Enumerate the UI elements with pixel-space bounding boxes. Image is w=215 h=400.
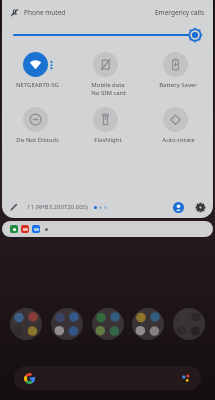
button[interactable]: NETGEAR70-5G <box>2 52 73 89</box>
other: Google Search <box>24 373 35 384</box>
staticText: No SIM card <box>91 89 126 97</box>
button[interactable] <box>12 24 203 46</box>
button[interactable]: App folder <box>132 308 164 340</box>
button[interactable]: Settings <box>195 202 206 213</box>
button[interactable]: App folder <box>173 308 205 340</box>
staticText: Do Not Disturb <box>16 136 59 144</box>
button[interactable]: Google Search <box>14 366 201 390</box>
button[interactable]: App folder <box>92 308 124 340</box>
button[interactable]: Emergency calls <box>155 8 205 17</box>
staticText: Phone muted <box>24 8 66 17</box>
button[interactable]: Edit tiles <box>9 202 19 212</box>
button[interactable]: App folder <box>10 308 42 340</box>
button[interactable]: App folder <box>51 308 83 340</box>
button[interactable]: User account <box>173 202 184 213</box>
button[interactable]: Flashlight <box>73 107 143 144</box>
staticText: NETGEAR70-5G <box>16 81 59 89</box>
button[interactable] <box>2 221 213 237</box>
staticText: Flashlight <box>94 136 122 144</box>
staticText: Mobile data <box>91 81 125 89</box>
staticText: Emergency calls <box>155 8 205 17</box>
button[interactable]: Mobile data <box>73 52 143 97</box>
staticText: Auto-rotate <box>162 136 195 144</box>
button[interactable]: Auto-rotate <box>143 107 213 144</box>
staticText: Battery Saver <box>159 81 197 89</box>
other: Phone muted <box>10 8 19 17</box>
button[interactable]: Do Not Disturb <box>2 107 73 144</box>
staticText: 11 (RPB3.200720.005) <box>27 203 88 211</box>
button[interactable]: Battery Saver <box>143 52 213 89</box>
